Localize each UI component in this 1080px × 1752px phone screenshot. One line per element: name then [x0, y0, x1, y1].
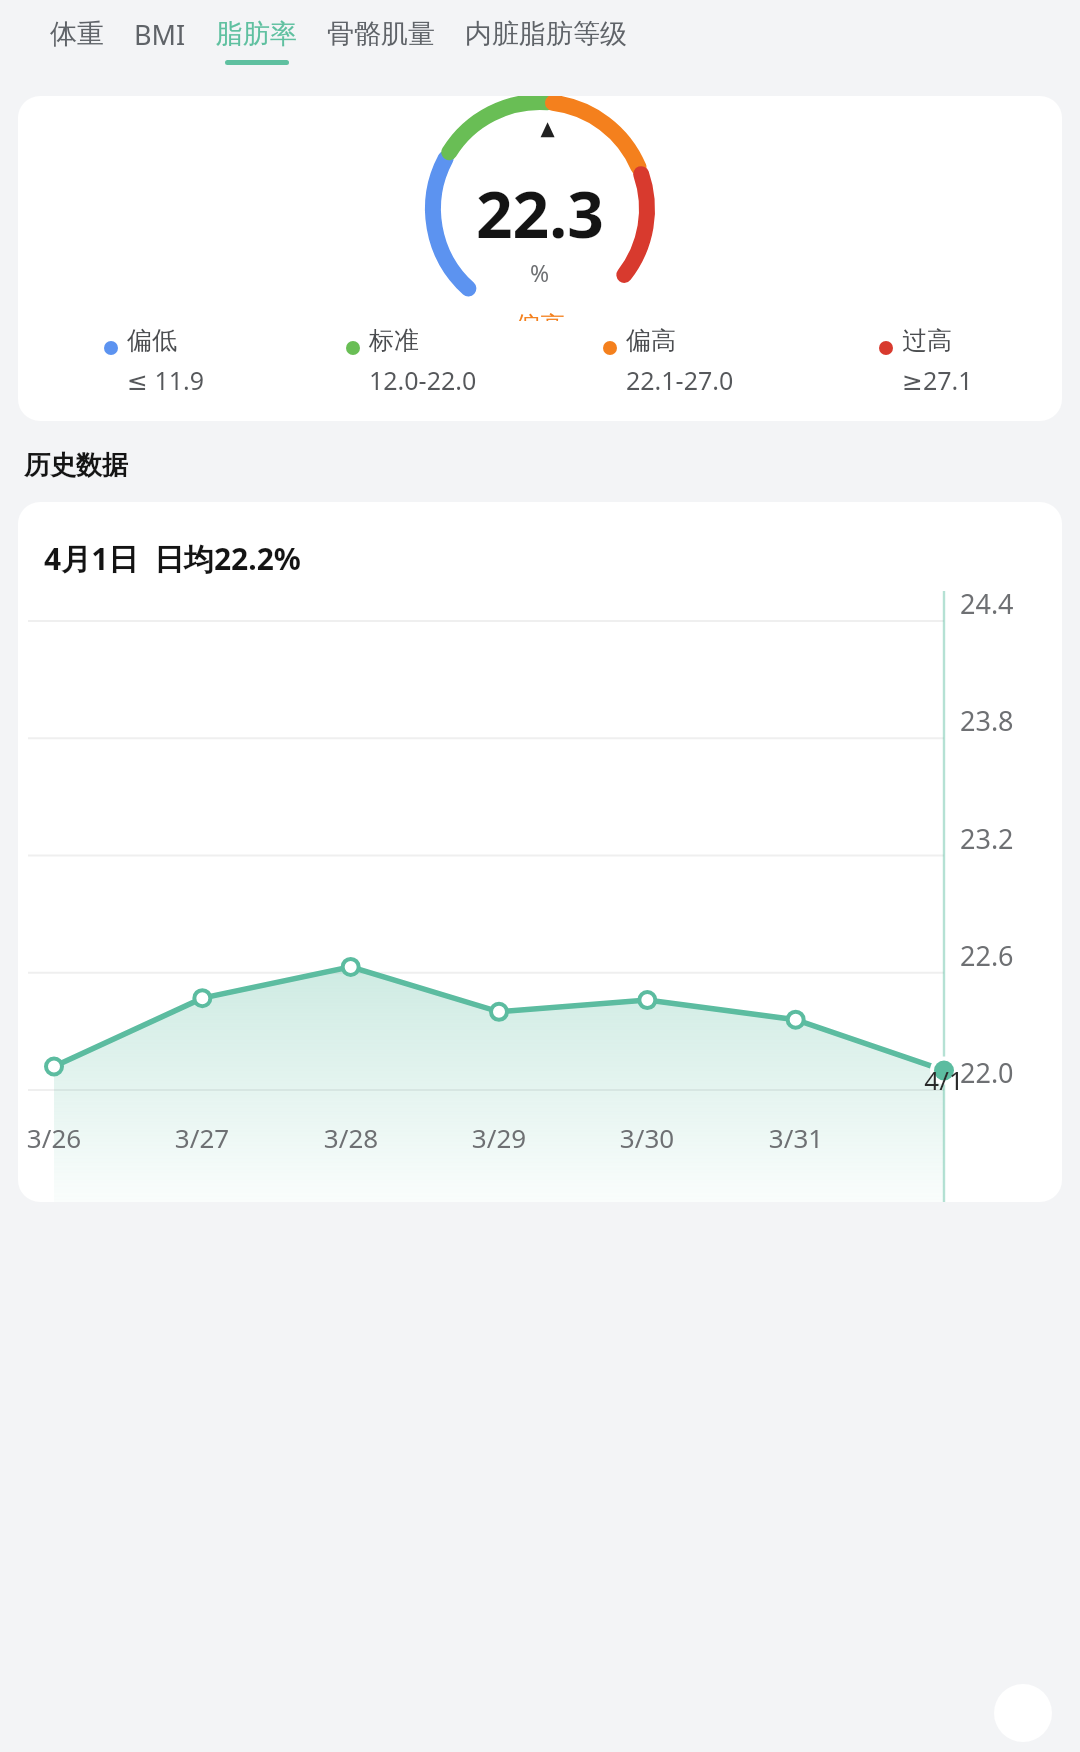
staticText: 骨骼肌量 — [327, 17, 435, 51]
staticText: 3/27 — [166, 1120, 238, 1155]
staticText: BMI — [134, 16, 186, 53]
staticText: 历史数据 — [24, 449, 128, 482]
staticText: ≤ 11.9 — [127, 363, 205, 397]
staticText: 体重 — [50, 17, 104, 51]
staticText: % — [530, 257, 550, 288]
staticText: 3/26 — [18, 1120, 90, 1155]
button[interactable]: BMI — [134, 16, 186, 67]
button[interactable]: 体重 — [50, 17, 104, 65]
button[interactable]: 内脏脂肪等级 — [465, 17, 627, 65]
button[interactable]: 4月1日 日均22.2% — [18, 502, 1062, 1202]
staticText: 标准 — [369, 325, 419, 356]
staticText: 3/30 — [611, 1120, 683, 1155]
staticText: 22.6 — [960, 937, 1014, 974]
staticText: 23.2 — [960, 820, 1014, 857]
button[interactable]: 22.3 — [18, 96, 1062, 421]
staticText: 偏高 — [626, 325, 676, 356]
staticText: 内脏脂肪等级 — [465, 17, 627, 51]
button[interactable]: 骨骼肌量 — [327, 17, 435, 65]
staticText: 22.3 — [476, 170, 604, 257]
staticText: 偏高 — [515, 310, 565, 321]
staticText: 23.8 — [960, 702, 1014, 739]
staticText: 22.1-27.0 — [626, 363, 734, 397]
staticText: 脂肪率 — [216, 17, 297, 51]
staticText: 3/28 — [315, 1120, 387, 1155]
staticText: 4月1日 日均22.2% — [44, 538, 301, 579]
button[interactable]: 脂肪率 — [216, 17, 297, 65]
staticText: 3/29 — [463, 1120, 535, 1155]
staticText: 12.0-22.0 — [369, 363, 477, 397]
staticText: 过高 — [902, 325, 952, 356]
staticText: ≥27.1 — [902, 363, 973, 397]
staticText: 22.0 — [960, 1054, 1014, 1091]
staticText: 4/1 — [908, 1062, 980, 1097]
staticText: 3/31 — [760, 1120, 832, 1155]
staticText: 偏低 — [127, 325, 177, 356]
button[interactable]: Add measurement — [994, 1684, 1052, 1742]
staticText: 24.4 — [960, 585, 1014, 622]
